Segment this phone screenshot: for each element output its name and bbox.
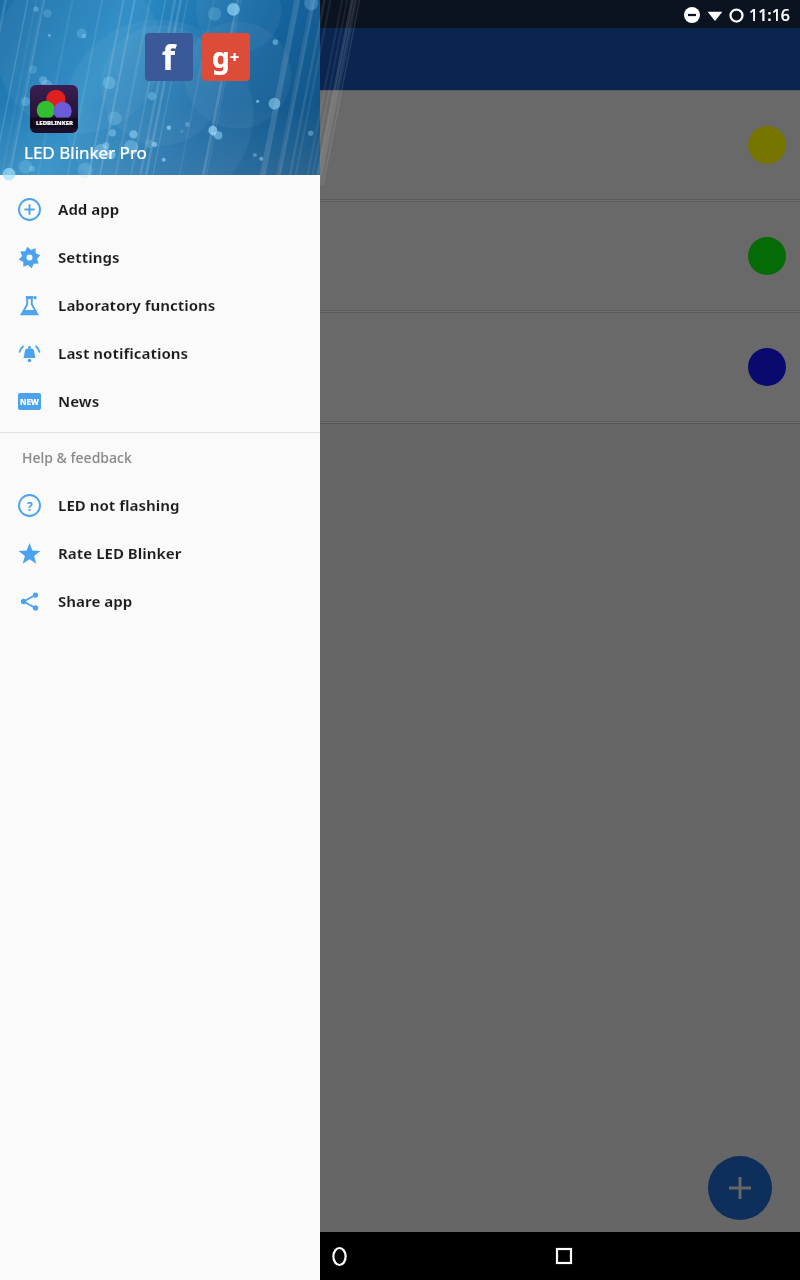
staticText: Settings: [58, 247, 120, 267]
button[interactable]: Google Plus: [202, 33, 250, 81]
button[interactable]: Recents: [544, 1236, 584, 1276]
button[interactable]: Add: [708, 1156, 772, 1220]
staticText: +: [230, 46, 240, 68]
button[interactable]: Laboratory functions: [0, 281, 320, 329]
button[interactable]: Add app: [0, 185, 320, 233]
staticText: f: [162, 34, 176, 80]
staticText: News: [58, 391, 100, 411]
staticText: g: [212, 38, 230, 76]
staticText: Laboratory functions: [58, 295, 216, 315]
staticText: 11:16: [749, 4, 790, 26]
button[interactable]: ?: [0, 481, 320, 529]
staticText: Help & feedback: [22, 448, 132, 467]
staticText: LED not flashing: [58, 495, 180, 515]
staticText: LED Blinker Pro: [24, 141, 147, 164]
staticText: Share app: [58, 591, 133, 611]
button[interactable]: NEW: [0, 377, 320, 425]
staticText: Add app: [58, 199, 120, 219]
button[interactable]: [0, 312, 800, 422]
staticText: LEDBLINKER: [36, 119, 73, 127]
button[interactable]: Rate LED Blinker: [0, 529, 320, 577]
button[interactable]: Home: [319, 1236, 359, 1276]
button[interactable]: [0, 201, 800, 311]
button[interactable]: Settings: [0, 233, 320, 281]
button[interactable]: Facebook: [145, 33, 193, 81]
staticText: Rate LED Blinker: [58, 543, 182, 563]
staticText: NEW: [20, 396, 39, 407]
button[interactable]: [0, 90, 800, 200]
button[interactable]: Last notifications: [0, 329, 320, 377]
staticText: ?: [27, 498, 33, 514]
button[interactable]: Share app: [0, 577, 320, 625]
staticText: Last notifications: [58, 343, 189, 363]
